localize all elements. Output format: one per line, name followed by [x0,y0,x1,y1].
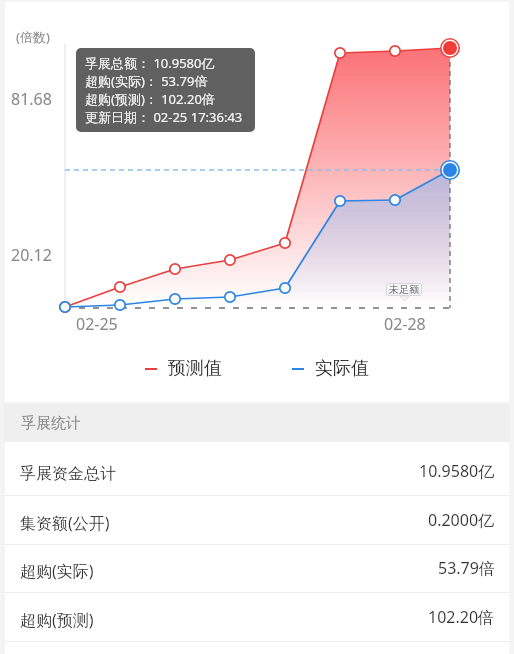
button[interactable]: 预测值 [145,357,222,380]
staticText: 预测值 [168,357,222,380]
staticText: 102.20倍 [428,606,495,628]
staticText: 孚展总额： 10.9580亿 [85,54,215,72]
staticText: 超购(预测)： 102.20倍 [85,90,215,108]
staticText: 53.79倍 [438,557,495,579]
staticText: 超购(实际)： 53.79倍 [85,72,208,90]
staticText: 孚展统计 [21,414,81,433]
button[interactable]: 集资额(公开) [5,496,509,545]
staticText: (倍数) [16,28,50,46]
staticText: 81.68 [11,88,52,110]
staticText: 超购(实际) [20,560,94,582]
button[interactable]: 孚展资金总计 [5,447,509,496]
staticText: 更新日期： 02-25 17:36:43 [85,108,243,126]
staticText: 02-25 [76,313,118,335]
staticText: 实际值 [315,357,369,380]
button[interactable]: 实际值 [292,357,369,380]
staticText: 孚展资金总计 [20,464,116,484]
staticText: 02-28 [384,313,426,335]
staticText: 超购(预测) [20,609,94,631]
button[interactable]: 超购(预测) [5,593,509,642]
staticText: 集资额(公开) [20,512,110,534]
staticText: 20.12 [11,244,52,266]
staticText: 0.2000亿 [428,509,495,531]
button[interactable]: 超购(实际) [5,544,509,593]
staticText: 10.9580亿 [419,460,495,482]
staticText: 未足额 [389,283,419,296]
